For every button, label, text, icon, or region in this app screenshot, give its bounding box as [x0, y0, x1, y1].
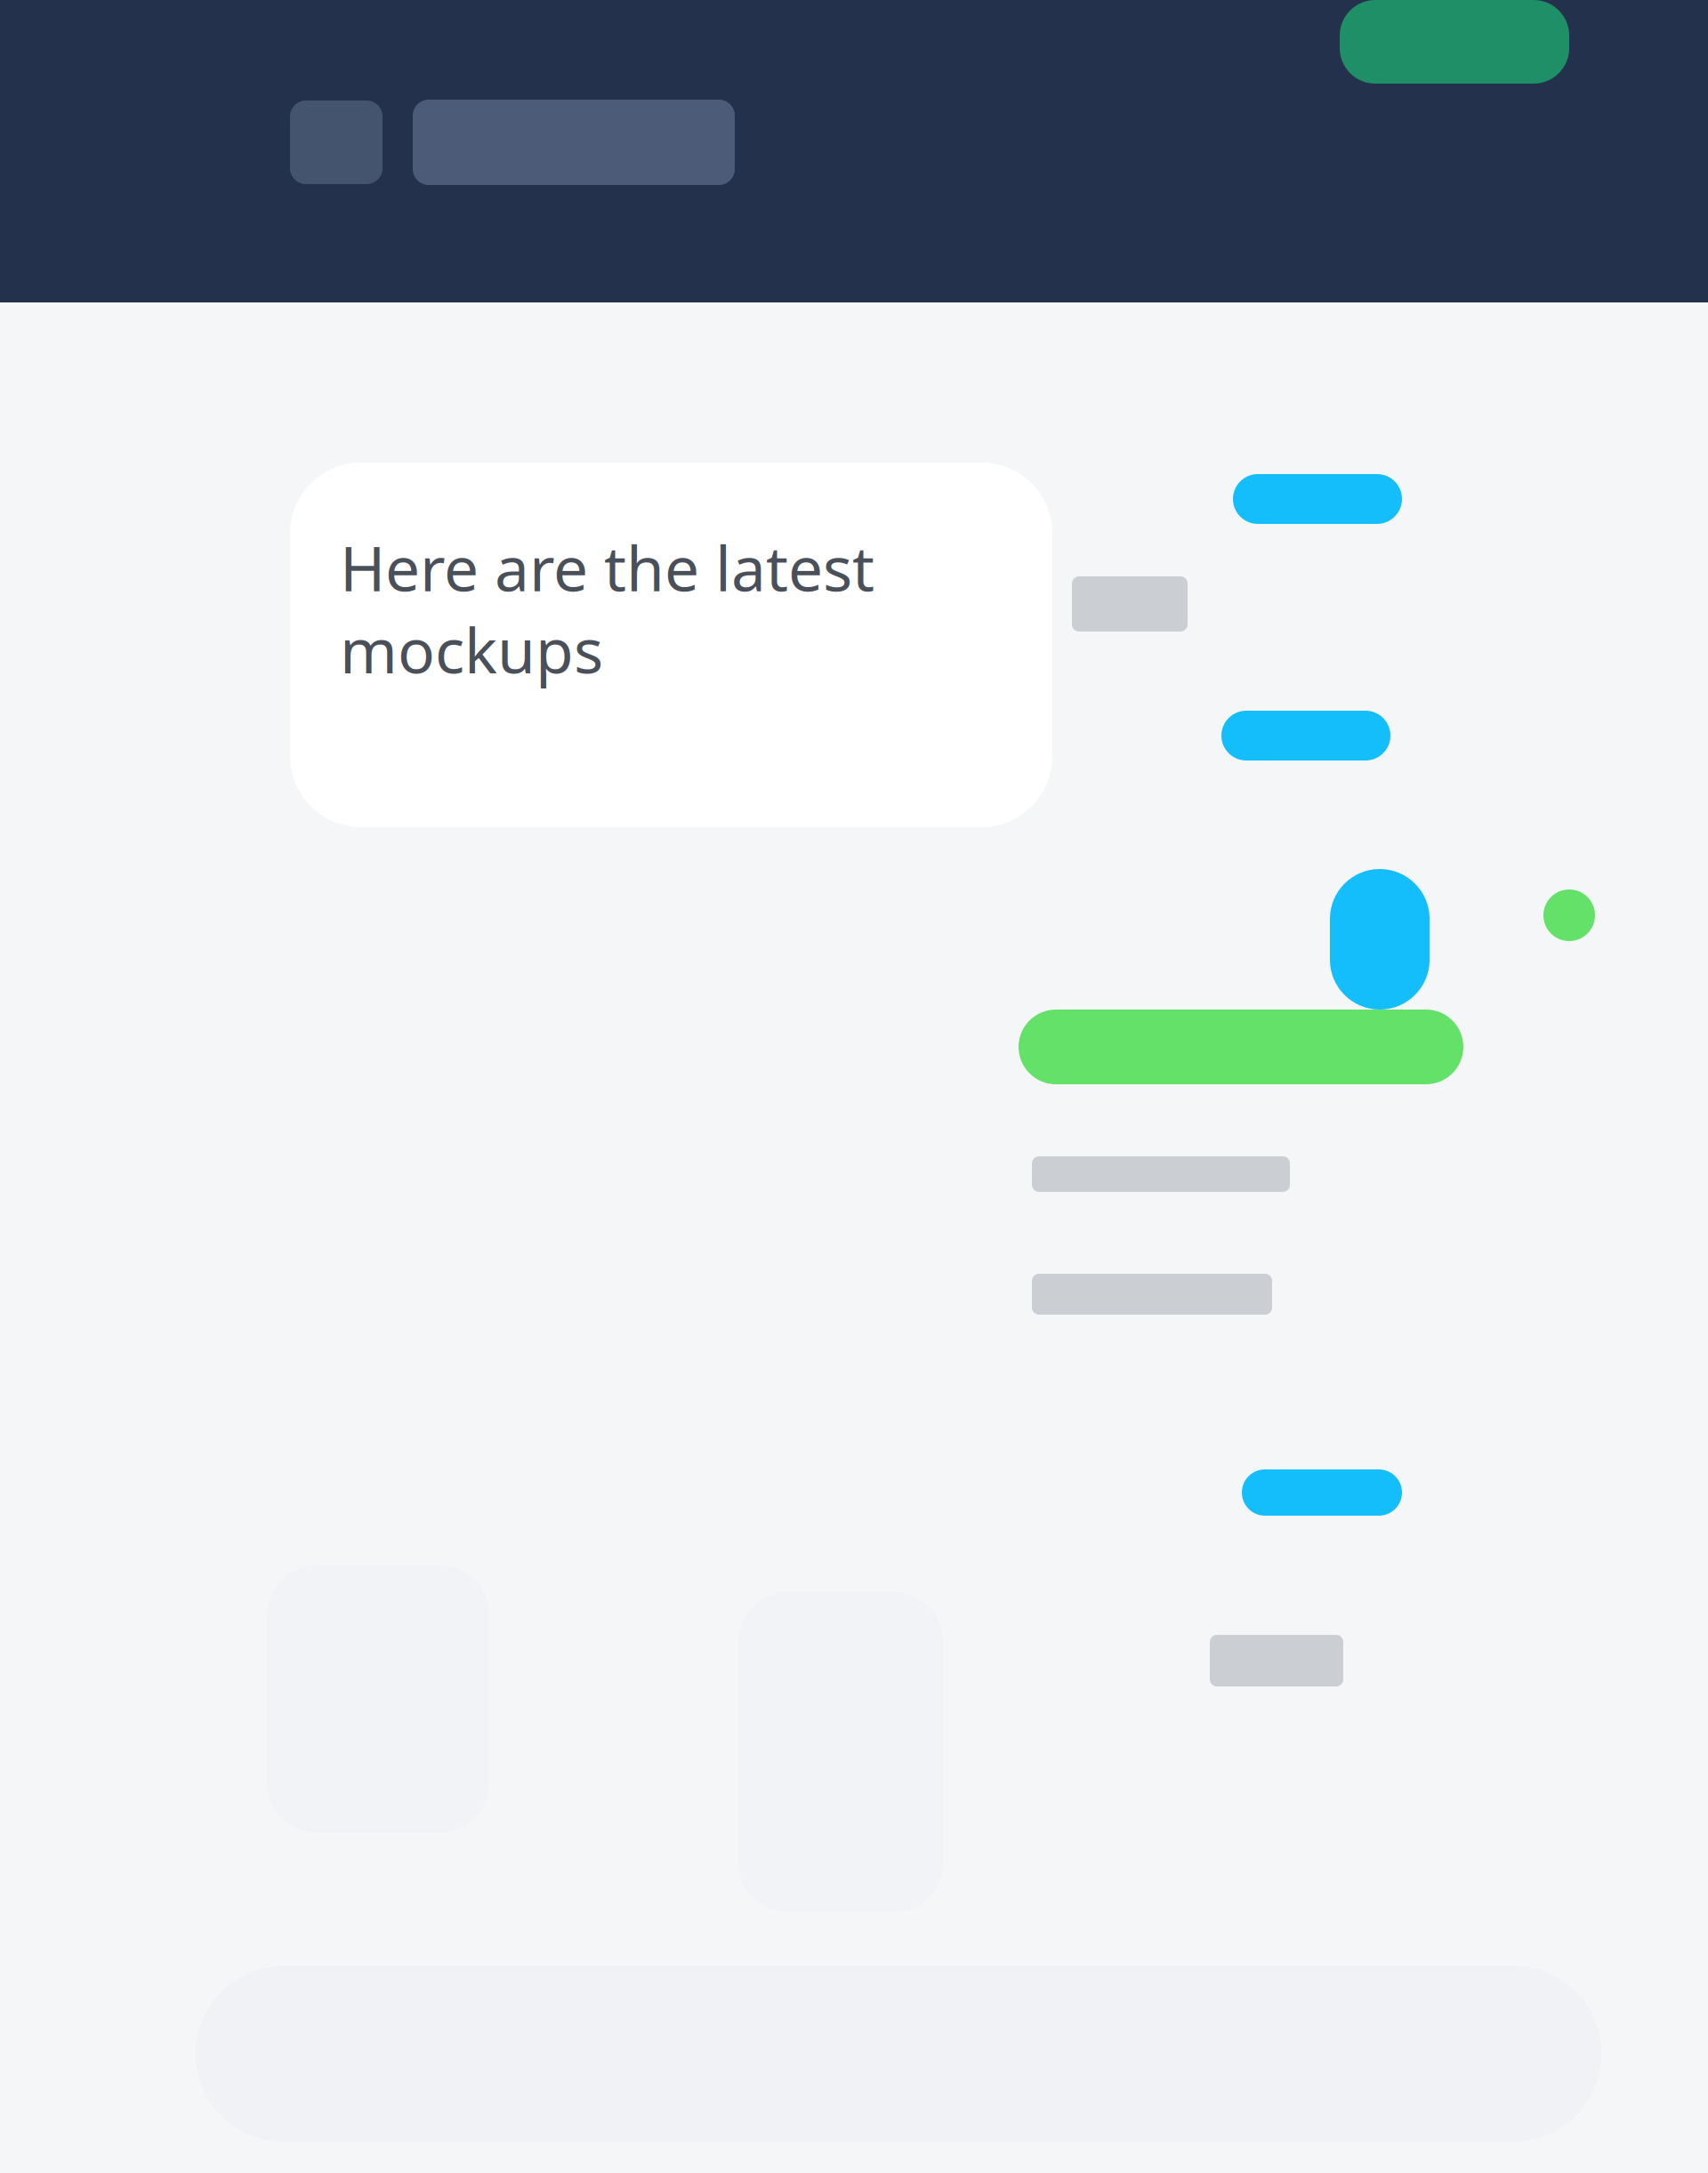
- button[interactable]: Back: [290, 101, 383, 184]
- button[interactable]: Sounds good: [1233, 474, 1402, 524]
- staticText: Here are the latest mockups: [340, 526, 874, 690]
- button[interactable]: See you at 3: [1242, 1469, 1402, 1516]
- button[interactable]: Here are the latest mockups: [290, 463, 1052, 827]
- button[interactable]: Shared the file: [1019, 1010, 1463, 1084]
- button[interactable]: On it: [1221, 711, 1390, 761]
- button[interactable]: Thanks: [1330, 869, 1430, 1010]
- button[interactable]: Active call: [1340, 0, 1569, 84]
